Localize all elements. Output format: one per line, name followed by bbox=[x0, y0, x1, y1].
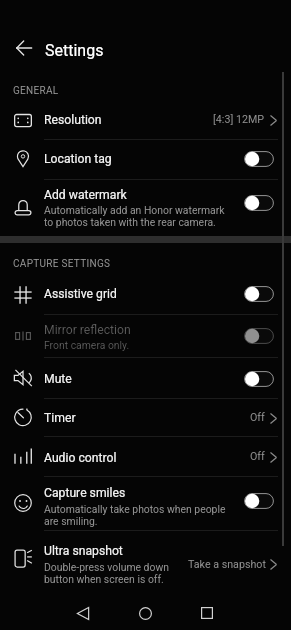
button[interactable] bbox=[0, 314, 291, 357]
staticText: Location tag bbox=[44, 152, 112, 166]
button[interactable] bbox=[0, 436, 291, 476]
staticText: Capture smiles bbox=[44, 486, 126, 500]
staticText: Settings bbox=[45, 41, 104, 60]
staticText: Audio control bbox=[44, 451, 117, 465]
button[interactable] bbox=[0, 530, 291, 585]
staticText: Double-press volume down button when scr… bbox=[44, 561, 169, 586]
button[interactable]: Toggle bbox=[244, 371, 274, 387]
button[interactable] bbox=[0, 398, 291, 436]
button[interactable]: Toggle bbox=[244, 493, 274, 509]
button[interactable] bbox=[0, 101, 291, 139]
staticText: Resolution bbox=[44, 113, 102, 127]
button[interactable]: Recents bbox=[187, 594, 227, 630]
staticText: Automatically take photos when people ar… bbox=[44, 503, 226, 528]
button[interactable] bbox=[0, 357, 291, 398]
staticText: Off bbox=[250, 450, 265, 463]
button[interactable]: Toggle bbox=[244, 286, 274, 302]
staticText: GENERAL bbox=[13, 85, 59, 97]
staticText: Mute bbox=[44, 372, 72, 386]
button[interactable]: Home bbox=[125, 594, 166, 630]
button[interactable]: Back bbox=[63, 594, 103, 630]
button[interactable] bbox=[0, 139, 291, 179]
staticText: Add watermark bbox=[44, 188, 127, 202]
staticText: Mirror reflection bbox=[44, 323, 131, 337]
staticText: Assistive grid bbox=[44, 287, 117, 301]
staticText: Timer bbox=[44, 411, 76, 425]
staticText: Ultra snapshot bbox=[44, 544, 123, 558]
button[interactable]: Toggle bbox=[244, 328, 274, 344]
staticText: Off bbox=[250, 411, 265, 424]
staticText: Automatically add an Honor watermark to … bbox=[44, 204, 225, 229]
staticText: [4:3] 12MP bbox=[213, 113, 265, 126]
button[interactable] bbox=[0, 179, 291, 235]
staticText: CAPTURE SETTINGS bbox=[13, 258, 111, 270]
button[interactable]: Toggle bbox=[244, 195, 274, 211]
staticText: Take a snapshot bbox=[188, 558, 266, 571]
button[interactable] bbox=[0, 276, 291, 314]
button[interactable]: Back bbox=[8, 33, 39, 63]
button[interactable] bbox=[0, 476, 291, 530]
button[interactable]: Toggle bbox=[244, 151, 274, 167]
staticText: Front camera only. bbox=[44, 339, 130, 351]
